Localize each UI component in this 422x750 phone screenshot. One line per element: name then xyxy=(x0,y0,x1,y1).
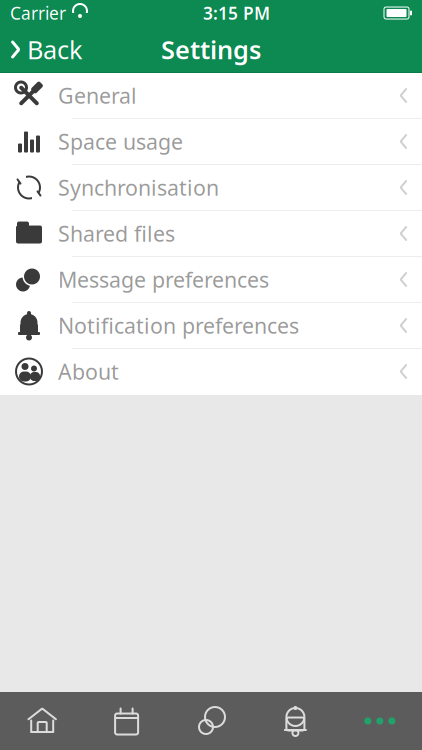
button[interactable]: General xyxy=(0,73,422,119)
staticText: Synchronisation xyxy=(58,173,219,202)
button[interactable]: Calendar xyxy=(84,692,169,750)
staticText: Message preferences xyxy=(58,265,269,294)
staticText: Notification preferences xyxy=(58,311,299,340)
button[interactable]: Back xyxy=(0,26,93,72)
staticText: Settings xyxy=(161,33,261,66)
button[interactable]: More xyxy=(338,692,422,750)
button[interactable]: Messages xyxy=(169,692,253,750)
button[interactable]: Notification preferences xyxy=(0,303,422,349)
button[interactable]: Notifications xyxy=(253,692,338,750)
staticText: About xyxy=(58,357,119,386)
button[interactable]: Synchronisation xyxy=(0,165,422,211)
button[interactable]: About xyxy=(0,349,422,395)
staticText: General xyxy=(58,81,137,110)
staticText: Carrier xyxy=(10,1,66,24)
staticText: Space usage xyxy=(58,127,183,156)
staticText: Shared files xyxy=(58,219,175,248)
staticText: 3:15 PM xyxy=(203,1,270,24)
button[interactable]: Shared files xyxy=(0,211,422,257)
button[interactable]: Message preferences xyxy=(0,257,422,303)
button[interactable]: Space usage xyxy=(0,119,422,165)
staticText: Back xyxy=(27,33,83,66)
button[interactable]: Home xyxy=(0,692,84,750)
